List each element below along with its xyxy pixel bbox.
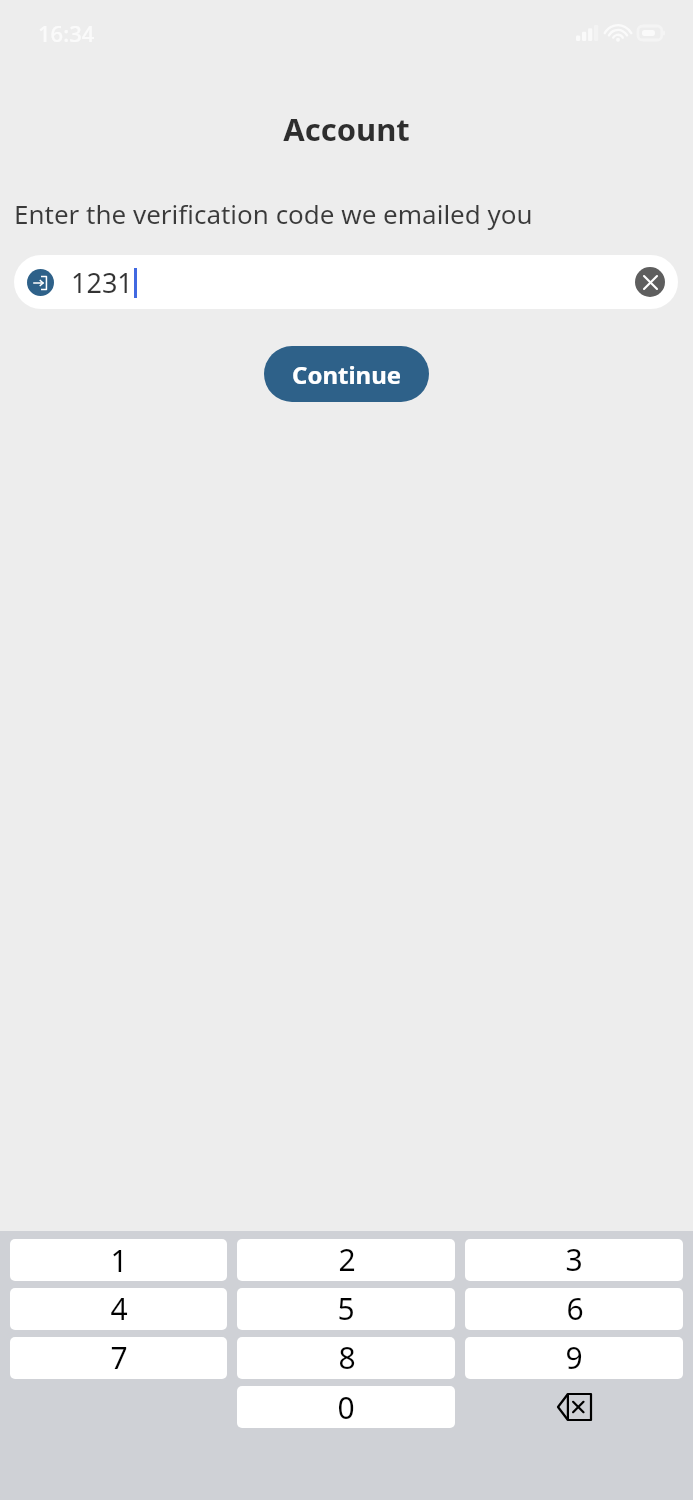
staticText: 3 — [565, 1239, 583, 1280]
staticText: 8 — [338, 1337, 356, 1378]
staticText: 1231 — [71, 264, 133, 301]
staticText: Enter the verification code we emailed y… — [14, 196, 645, 231]
staticText: 16:34 — [38, 18, 95, 48]
staticText: 5 — [337, 1288, 355, 1329]
staticText: 9 — [565, 1337, 583, 1378]
button[interactable]: 8 — [237, 1337, 455, 1379]
button[interactable]: 6 — [465, 1288, 683, 1330]
staticText: Account — [0, 108, 693, 150]
button[interactable]: 1231 — [14, 255, 678, 309]
button[interactable]: 1 — [10, 1239, 227, 1281]
staticText: 2 — [338, 1239, 356, 1280]
staticText: 0 — [337, 1387, 355, 1428]
staticText: 4 — [110, 1288, 128, 1329]
staticText: Continue — [292, 358, 402, 391]
staticText: 7 — [110, 1337, 128, 1378]
staticText: 1 — [110, 1240, 128, 1281]
button[interactable]: 3 — [465, 1239, 683, 1281]
button[interactable]: 5 — [237, 1288, 455, 1330]
button[interactable]: 4 — [10, 1288, 227, 1330]
button[interactable]: 2 — [237, 1239, 455, 1281]
button[interactable]: 0 — [237, 1386, 455, 1428]
button[interactable]: 7 — [10, 1337, 227, 1379]
button[interactable]: Continue — [264, 346, 429, 402]
staticText: 6 — [566, 1288, 584, 1329]
button[interactable]: Backspace — [460, 1386, 688, 1428]
button[interactable]: 9 — [465, 1337, 683, 1379]
button[interactable]: Clear text — [635, 267, 665, 297]
